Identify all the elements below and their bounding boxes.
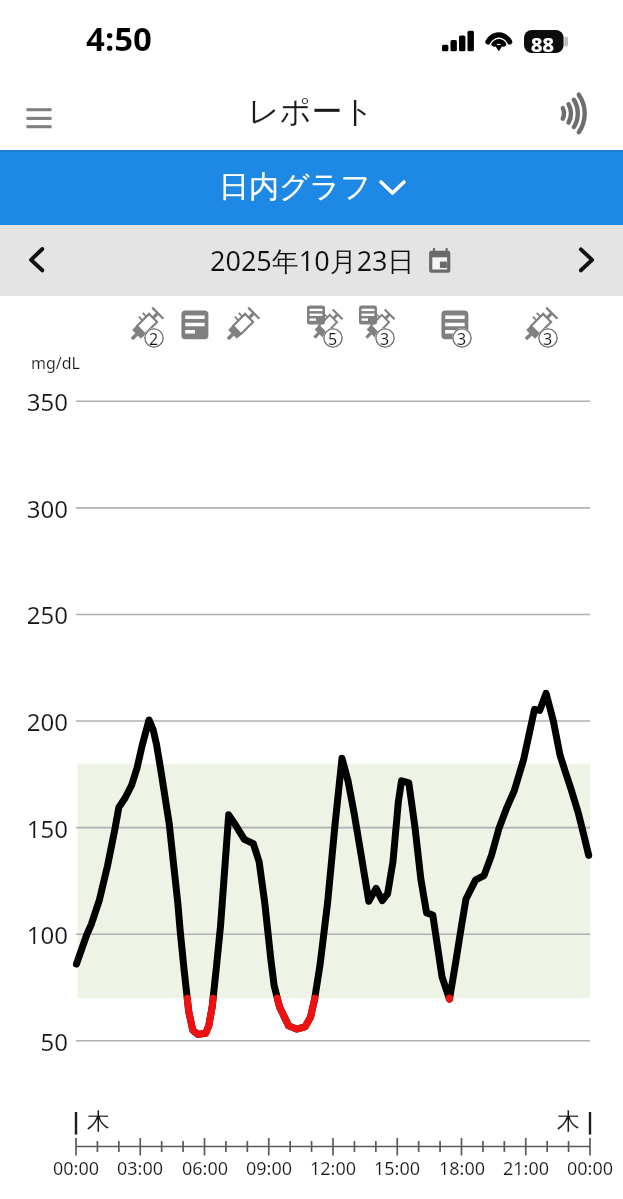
button[interactable]: Next day (559, 233, 615, 289)
staticText: mg/dL (31, 352, 80, 374)
button[interactable]: Previous day (8, 233, 64, 289)
staticText: 2 (149, 328, 159, 348)
staticText: 250 (26, 598, 68, 631)
staticText: 15:00 (374, 1156, 421, 1181)
staticText: 3 (380, 328, 390, 348)
staticText: 200 (26, 705, 68, 738)
staticText: 300 (26, 492, 68, 525)
staticText: 3 (457, 328, 467, 348)
button[interactable]: 日内グラフ (0, 150, 623, 225)
staticText: 2025年10月23日 (210, 242, 415, 279)
staticText: 18:00 (439, 1156, 486, 1181)
staticText: 00:00 (53, 1156, 100, 1181)
button[interactable]: Menu (16, 86, 62, 132)
staticText: 木 (557, 1107, 580, 1136)
staticText: 150 (26, 812, 68, 845)
staticText: 5 (328, 328, 338, 348)
staticText: 09:00 (246, 1156, 293, 1181)
staticText: 21:00 (503, 1156, 550, 1181)
staticText: 88 (531, 31, 554, 58)
staticText: 03:00 (117, 1156, 164, 1181)
staticText: 木 (87, 1107, 110, 1136)
staticText: 350 (26, 385, 68, 418)
staticText: レポート (248, 92, 375, 131)
staticText: 100 (26, 918, 68, 951)
staticText: 12:00 (310, 1156, 357, 1181)
button[interactable]: 2025年10月23日 (200, 227, 460, 295)
button[interactable]: NFC (546, 87, 598, 139)
staticText: 3 (543, 328, 553, 348)
staticText: 00:00 (567, 1156, 614, 1181)
staticText: 06:00 (182, 1156, 229, 1181)
staticText: 4:50 (86, 16, 152, 61)
staticText: 日内グラフ (219, 168, 372, 206)
staticText: 50 (40, 1025, 68, 1058)
